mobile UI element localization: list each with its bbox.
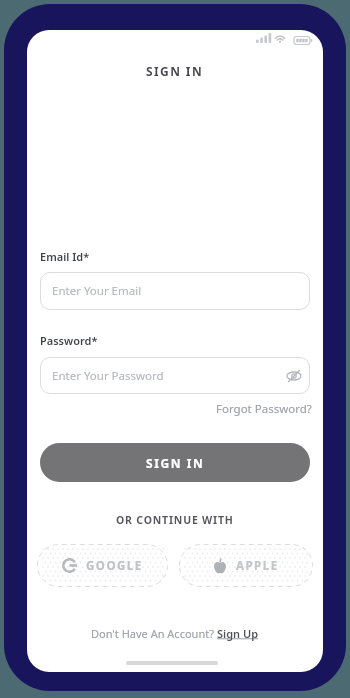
button[interactable]: Enter Your Password: [40, 357, 310, 394]
staticText: Don't Have An Account?: [91, 626, 217, 641]
staticText: Enter Your Password: [52, 368, 164, 384]
staticText: Enter Your Email: [52, 283, 142, 299]
staticText: GOOGLE: [86, 558, 143, 574]
button[interactable]: SIGN IN: [40, 443, 310, 482]
button[interactable]: Forgot Password?: [216, 401, 312, 417]
button[interactable]: Sign Up: [217, 626, 259, 641]
button[interactable]: APPLE: [179, 544, 313, 587]
staticText: SIGN IN: [146, 455, 205, 471]
staticText: APPLE: [236, 558, 279, 574]
staticText: OR CONTINUE WITH: [116, 513, 234, 527]
staticText: Password*: [40, 333, 98, 348]
button[interactable]: Enter Your Email: [40, 272, 310, 310]
button[interactable]: GOOGLE: [37, 544, 168, 587]
staticText: Email Id*: [40, 249, 90, 264]
staticText: SIGN IN: [146, 63, 204, 79]
